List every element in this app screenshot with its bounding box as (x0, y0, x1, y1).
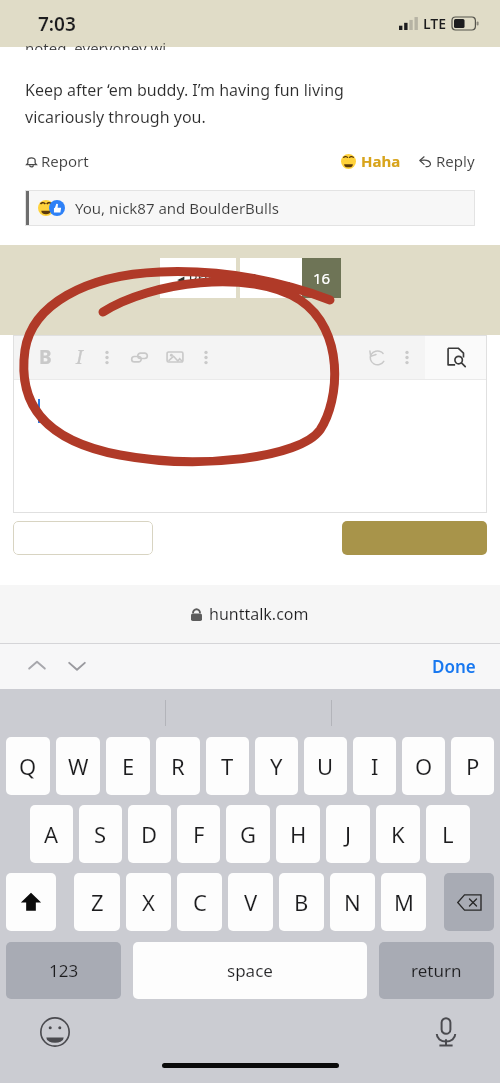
staticText: ... (279, 268, 292, 288)
staticText: You, nick87 and BoulderBulls (75, 198, 280, 218)
button[interactable] (13, 380, 487, 513)
button[interactable]: ◂ Prev (160, 258, 236, 298)
staticText: O (415, 751, 433, 781)
staticText: J (345, 819, 352, 849)
staticText: Keep after ‘em buddy. I’m having fun liv… (25, 79, 344, 101)
button[interactable]: Reply (419, 148, 475, 174)
button[interactable]: Insert image (166, 348, 184, 366)
button[interactable]: C (177, 873, 222, 931)
button[interactable]: J (326, 805, 370, 863)
staticText: R (171, 751, 185, 781)
button[interactable]: Next field (64, 653, 90, 679)
button[interactable]: More (405, 350, 409, 365)
staticText: P (466, 751, 480, 781)
staticText: I (371, 751, 379, 781)
button[interactable]: Preview (425, 335, 487, 379)
staticText: LTE (423, 14, 447, 33)
staticText: W (68, 751, 89, 781)
staticText: ◂ Prev (177, 268, 220, 288)
button[interactable]: I (76, 344, 83, 370)
button[interactable]: I (353, 737, 396, 795)
button[interactable]: K (376, 805, 420, 863)
button[interactable]: 123 (6, 942, 121, 999)
button[interactable]: More (105, 350, 109, 365)
staticText: N (344, 887, 361, 917)
button[interactable]: O (402, 737, 445, 795)
staticText: hunttalk.com (209, 603, 309, 625)
button[interactable]: 1 (240, 258, 268, 298)
button[interactable]: hunttalk.com (0, 585, 500, 643)
button[interactable]: S (79, 805, 122, 863)
button[interactable]: Z (74, 873, 120, 931)
staticText: S (94, 819, 107, 849)
staticText: T (221, 751, 234, 781)
button[interactable]: L (426, 805, 470, 863)
button[interactable]: D (128, 805, 171, 863)
staticText: Haha (361, 151, 401, 171)
staticText: K (391, 819, 405, 849)
button[interactable]: Previous field (24, 653, 50, 679)
button[interactable]: Done (408, 649, 500, 684)
staticText: E (122, 751, 135, 781)
button[interactable]: Haha (341, 148, 401, 174)
staticText: Done (432, 655, 476, 678)
staticText: X (142, 887, 155, 917)
staticText: 7:03 (38, 11, 76, 37)
button[interactable]: B (279, 873, 324, 931)
button[interactable]: G (226, 805, 270, 863)
button[interactable]: Report (25, 148, 89, 174)
button[interactable]: Undo (368, 348, 387, 367)
button[interactable]: Backspace (444, 873, 494, 931)
button[interactable]: You, nick87 and BoulderBulls (25, 190, 475, 226)
button[interactable]: A (30, 805, 73, 863)
button[interactable]: X (126, 873, 171, 931)
button[interactable]: return (379, 942, 494, 999)
staticText: U (317, 751, 334, 781)
button[interactable] (13, 521, 153, 555)
staticText: 1 (250, 268, 259, 288)
button[interactable]: F (177, 805, 220, 863)
button[interactable]: U (304, 737, 347, 795)
staticText: M (394, 887, 414, 917)
button[interactable]: More (204, 350, 208, 365)
button[interactable]: M (381, 873, 426, 931)
staticText: vicariously through you. (25, 106, 206, 128)
staticText: Report (41, 151, 89, 171)
staticText: Y (270, 751, 283, 781)
staticText: G (240, 819, 257, 849)
button[interactable]: ... (268, 258, 302, 298)
button[interactable]: Emoji (40, 1017, 70, 1047)
staticText: F (193, 819, 205, 849)
button[interactable]: E (106, 737, 150, 795)
staticText: Q (19, 751, 37, 781)
staticText: Z (91, 887, 104, 917)
button[interactable]: N (330, 873, 375, 931)
staticText: C (193, 887, 207, 917)
button[interactable]: Dictation (435, 1017, 457, 1047)
button[interactable]: Shift (6, 873, 56, 931)
button[interactable]: 16 (302, 258, 341, 298)
button[interactable]: B (39, 344, 52, 370)
button[interactable]: Insert link (131, 349, 148, 366)
button[interactable]: W (56, 737, 100, 795)
staticText: space (227, 959, 273, 982)
button[interactable]: Y (255, 737, 298, 795)
staticText: V (244, 887, 258, 917)
button[interactable]: T (206, 737, 249, 795)
staticText: Reply (436, 151, 475, 171)
staticText: L (442, 819, 454, 849)
button[interactable]: Q (6, 737, 50, 795)
staticText: return (411, 959, 462, 982)
button[interactable]: P (451, 737, 494, 795)
staticText: 16 (313, 268, 331, 288)
button[interactable]: H (276, 805, 320, 863)
staticText: 123 (49, 959, 79, 982)
button[interactable] (342, 521, 487, 555)
staticText: noteq, everyoney wi (25, 38, 167, 50)
button[interactable]: V (228, 873, 273, 931)
staticText: D (141, 819, 158, 849)
button[interactable]: space (133, 942, 367, 999)
staticText: H (290, 819, 307, 849)
staticText: B (294, 887, 309, 917)
button[interactable]: R (156, 737, 200, 795)
